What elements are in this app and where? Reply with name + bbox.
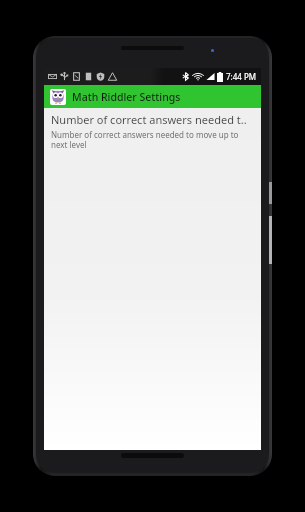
staticText: Math Riddler Settings [72,90,181,104]
staticText: 7:44 PM [226,71,257,82]
button[interactable]: Number of correct answers needed t.. [44,108,261,156]
button[interactable]: Math Riddler [44,85,261,108]
staticText: Number of correct answers needed t.. [51,112,247,127]
other: Math Riddler [50,89,66,105]
staticText: Number of correct answers needed to move… [51,129,254,150]
